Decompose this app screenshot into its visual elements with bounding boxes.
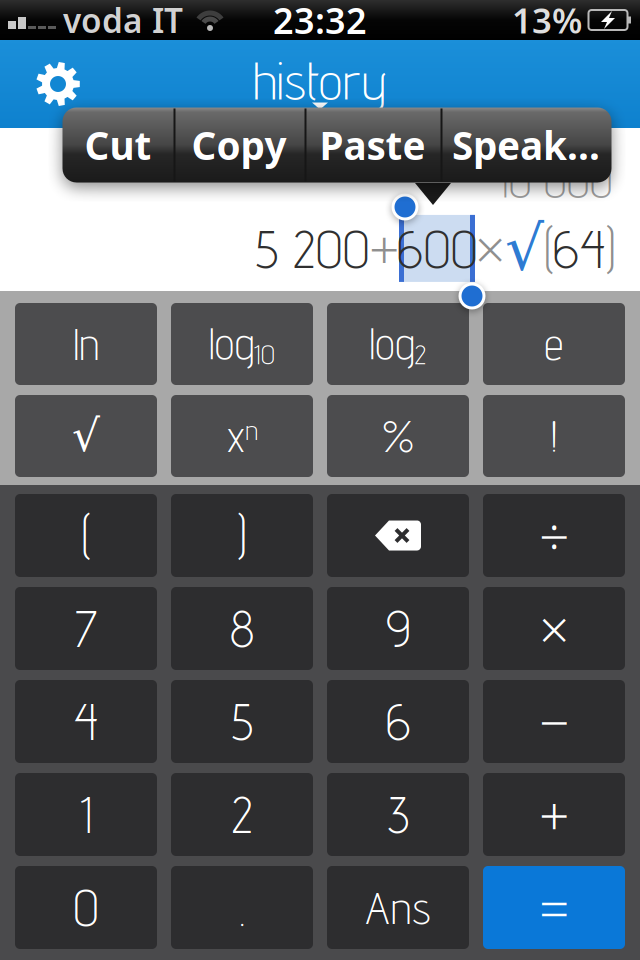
staticText: 2 (231, 784, 252, 845)
staticText: Copy (191, 119, 286, 171)
button[interactable]: ( (15, 494, 157, 577)
staticText: 9 (386, 598, 410, 659)
button[interactable]: ÷ (483, 494, 625, 577)
staticText: Paste (319, 119, 425, 171)
button[interactable]: 1 (15, 773, 157, 856)
staticText: 10 000 (498, 154, 612, 208)
staticText: Ans (365, 880, 431, 934)
button[interactable]: history (253, 48, 387, 112)
staticText: + (539, 779, 569, 850)
staticText: e (544, 318, 563, 370)
button[interactable]: Copy (173, 107, 304, 182)
staticText: × (475, 213, 505, 284)
staticText: log2 (369, 318, 426, 370)
staticText: × (539, 593, 569, 664)
button[interactable]: 2 (171, 773, 313, 856)
staticText: + (369, 213, 399, 284)
staticText: ÷ (539, 500, 569, 571)
staticText: 0 (73, 877, 98, 938)
staticText: voda IT (63, 0, 183, 42)
button[interactable]: . (171, 866, 313, 949)
staticText: . (239, 877, 245, 938)
button[interactable]: e (483, 303, 625, 385)
button[interactable]: 9 (327, 587, 469, 670)
button[interactable]: = (483, 866, 625, 949)
staticText: log10 (209, 318, 275, 370)
staticText: ln (73, 318, 98, 370)
staticText: 13% (512, 0, 582, 43)
staticText: 5 (231, 691, 253, 752)
staticText: 7 (75, 598, 97, 659)
staticText: % (382, 410, 413, 462)
button[interactable]: × (483, 587, 625, 670)
staticText: 64 (553, 217, 606, 280)
staticText: ( (81, 505, 90, 566)
button[interactable]: log2 (327, 303, 469, 385)
staticText: 23:32 (273, 0, 367, 44)
staticText: ( (544, 217, 553, 280)
button[interactable]: 7 (15, 587, 157, 670)
staticText: ) (606, 217, 615, 280)
button[interactable]: Delete (327, 494, 469, 577)
button[interactable]: ) (171, 494, 313, 577)
staticText: 1 (80, 784, 91, 845)
button[interactable]: Settings (35, 61, 81, 107)
button[interactable]: % (327, 395, 469, 477)
button[interactable]: 3 (327, 773, 469, 856)
staticText: 3 (387, 784, 409, 845)
staticText: Speak... (452, 119, 600, 171)
staticText: xn (226, 410, 257, 462)
button[interactable]: Speak... (440, 107, 611, 182)
staticText: 5 200 (255, 217, 369, 280)
button[interactable]: 0 (15, 866, 157, 949)
staticText: Cut (84, 119, 151, 171)
button[interactable]: ! (483, 395, 625, 477)
staticText: 4 (74, 691, 98, 752)
staticText: 6 (386, 691, 410, 752)
staticText: history (253, 48, 387, 112)
staticText: 8 (230, 598, 254, 659)
button[interactable]: 6 (327, 680, 469, 763)
staticText: = (539, 872, 569, 943)
button[interactable]: 4 (15, 680, 157, 763)
button[interactable]: 8 (171, 587, 313, 670)
staticText: √ (505, 214, 544, 283)
button[interactable]: − (483, 680, 625, 763)
button[interactable]: ln (15, 303, 157, 385)
button[interactable]: + (483, 773, 625, 856)
button[interactable]: Paste (304, 107, 440, 182)
button[interactable]: 5 (171, 680, 313, 763)
staticText: 600 (397, 217, 477, 280)
button[interactable]: Cut (62, 107, 173, 182)
button[interactable]: Ans (327, 866, 469, 949)
button[interactable]: xn (171, 395, 313, 477)
staticText: ) (237, 505, 246, 566)
button[interactable]: √ (15, 395, 157, 477)
staticText: ! (551, 410, 557, 462)
staticText: √ (72, 410, 100, 462)
button[interactable]: log10 (171, 303, 313, 385)
staticText: − (539, 686, 569, 757)
